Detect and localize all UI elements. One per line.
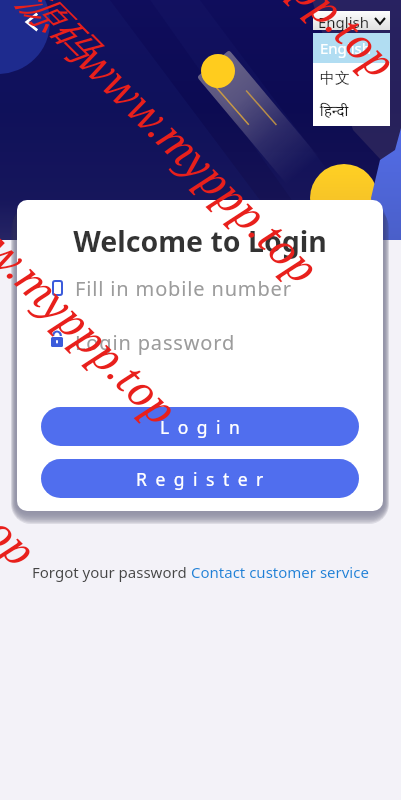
button[interactable]: Register xyxy=(41,459,359,498)
button[interactable]: English xyxy=(313,33,390,63)
button[interactable]: Contact customer service xyxy=(191,562,369,582)
staticText: English xyxy=(318,12,370,31)
button[interactable]: Back xyxy=(16,6,48,38)
button[interactable]: Login xyxy=(41,407,359,446)
staticText: हिन्दी xyxy=(320,100,349,120)
staticText: Login xyxy=(160,415,249,439)
staticText: Welcome to Login xyxy=(17,222,383,261)
staticText: Register xyxy=(136,467,272,491)
staticText: 中文 xyxy=(320,69,350,88)
staticText: Fill in mobile number xyxy=(75,275,292,302)
button[interactable]: English xyxy=(313,11,390,30)
staticText: Contact customer service xyxy=(191,562,369,582)
staticText: Forgot your password xyxy=(32,562,191,582)
staticText: English xyxy=(320,38,372,58)
button[interactable]: 中文 xyxy=(313,63,390,94)
staticText: Login password xyxy=(75,329,236,356)
button[interactable]: हिन्दी xyxy=(313,94,390,126)
